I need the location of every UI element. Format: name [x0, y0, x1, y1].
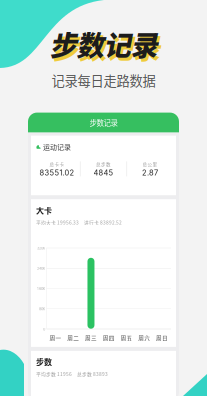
staticText: 2.87	[142, 168, 158, 177]
staticText: 周二	[67, 334, 79, 342]
staticText: 总步数	[96, 161, 111, 167]
staticText: 进行卡 83892.52	[84, 219, 122, 226]
staticText: 总卡卡	[49, 161, 64, 167]
staticText: 320k	[37, 246, 45, 250]
staticText: 大卡	[36, 204, 52, 216]
staticText: 80k	[39, 307, 45, 311]
staticText: 运动记录	[43, 142, 71, 152]
staticText: 总公里	[142, 161, 157, 167]
staticText: 0	[43, 327, 45, 331]
staticText: 平均步数 11956	[36, 370, 72, 377]
staticText: 总步数 83893	[77, 370, 108, 377]
staticText: 周六	[138, 334, 150, 342]
staticText: 步数记录	[49, 24, 157, 64]
staticText: 周日	[156, 334, 168, 342]
staticText: 周四	[103, 334, 115, 342]
staticText: 步数	[36, 356, 52, 367]
staticText: 步数记录	[52, 27, 160, 67]
staticText: 4845	[93, 168, 113, 177]
staticText: 240k	[37, 266, 45, 271]
staticText: 周五	[120, 334, 132, 342]
staticText: 平均大卡 19956.33	[36, 219, 79, 226]
staticText: 周一	[49, 334, 61, 342]
staticText: 步数记录	[89, 117, 117, 128]
staticText: 周三	[85, 334, 97, 342]
staticText: 记录每日走路数据	[51, 71, 155, 90]
staticText: 160k	[37, 286, 45, 291]
staticText: 83551.02	[39, 168, 74, 177]
